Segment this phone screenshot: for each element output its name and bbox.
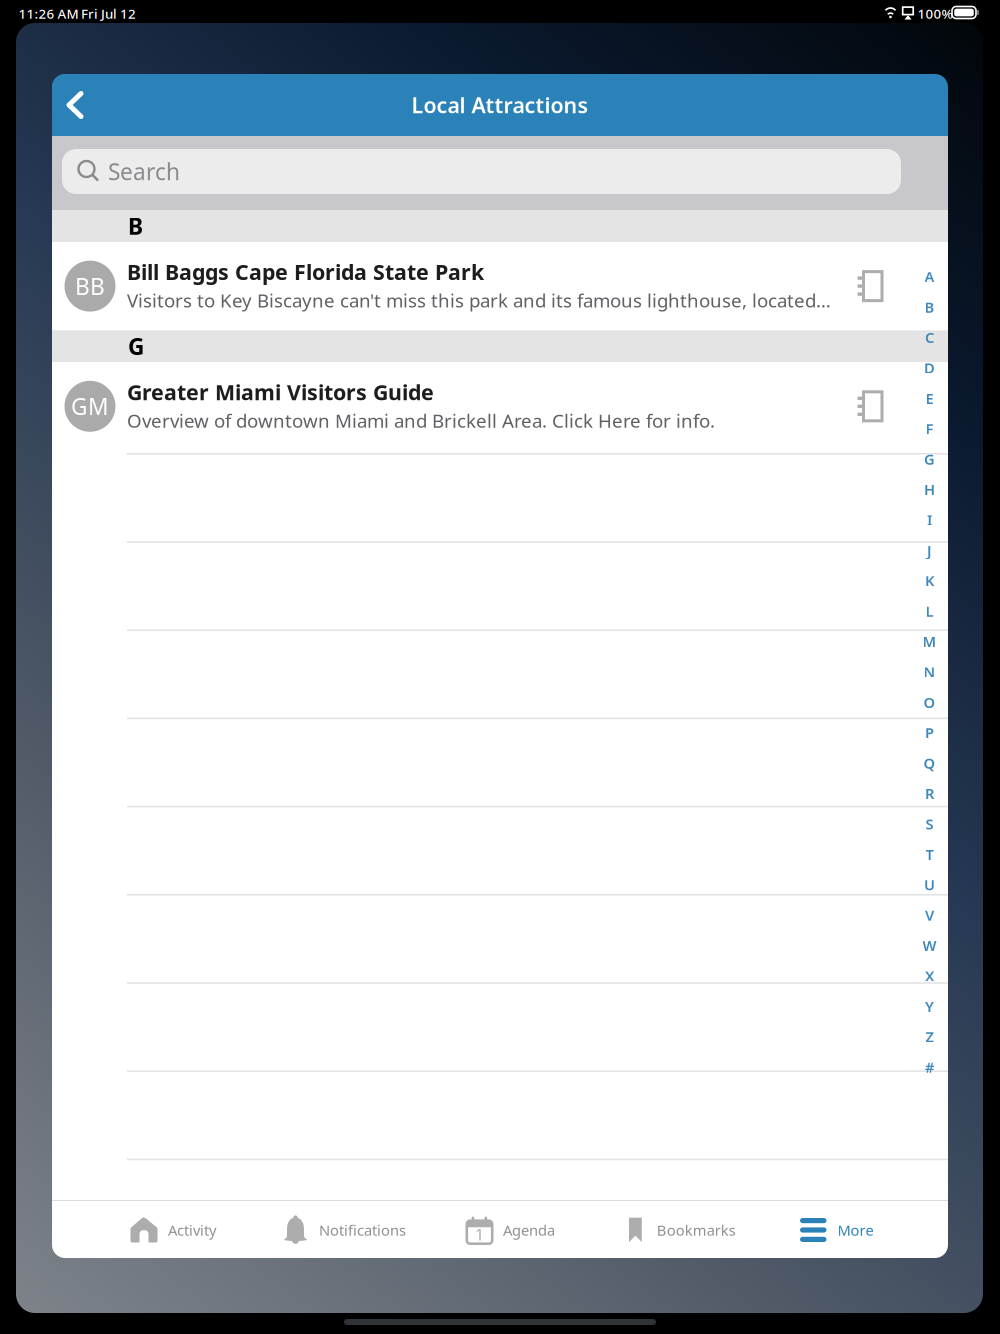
staticText: O [923, 692, 935, 712]
button[interactable]: More [800, 1202, 984, 1258]
staticText: 100% [917, 5, 952, 22]
staticText: J [927, 540, 932, 560]
staticText: Z [925, 1027, 933, 1046]
staticText: D [924, 358, 935, 378]
staticText: GM [71, 391, 109, 421]
staticText: Bookmarks [657, 1220, 736, 1240]
button[interactable]: Back [52, 74, 98, 136]
staticText: F [925, 419, 933, 438]
staticText: H [924, 480, 935, 499]
button[interactable]: 1 [466, 1202, 666, 1258]
staticText: Greater Miami Visitors Guide [127, 378, 434, 406]
staticText: V [925, 905, 934, 925]
staticText: G [128, 331, 144, 361]
button[interactable]: Notifications [282, 1202, 512, 1258]
staticText: Local Attractions [411, 91, 588, 119]
staticText: Q [923, 753, 935, 773]
button[interactable]: Bookmarks [628, 1202, 840, 1258]
staticText: K [925, 571, 934, 590]
staticText: A [924, 267, 934, 286]
staticText: # [925, 1057, 934, 1077]
staticText: Y [925, 996, 934, 1016]
staticText: Notifications [319, 1220, 406, 1240]
staticText: More [837, 1220, 873, 1240]
staticText: Overview of downtown Miami and Brickell … [127, 408, 715, 433]
staticText: C [925, 328, 934, 347]
staticText: BB [75, 271, 105, 301]
staticText: Visitors to Key Biscayne can't miss this… [127, 288, 831, 313]
staticText: 11:26 AM [18, 5, 78, 22]
staticText: Activity [168, 1220, 216, 1240]
staticText: W [922, 936, 936, 955]
staticText: R [925, 784, 934, 803]
button[interactable]: BB [52, 242, 948, 330]
staticText: I [927, 510, 932, 530]
staticText: N [923, 662, 935, 682]
staticText: T [925, 844, 933, 864]
staticText: L [925, 601, 933, 621]
button[interactable]: Search [62, 149, 901, 194]
staticText: P [925, 723, 934, 742]
staticText: E [925, 388, 933, 408]
staticText: Agenda [503, 1220, 555, 1240]
staticText: M [922, 632, 936, 651]
staticText: S [925, 814, 933, 834]
staticText: U [924, 875, 935, 894]
staticText: B [924, 297, 934, 317]
staticText: Search [108, 156, 180, 186]
button[interactable]: GM [52, 362, 948, 450]
staticText: 1 [475, 1224, 484, 1245]
staticText: G [924, 449, 935, 469]
button[interactable]: Activity [130, 1202, 330, 1258]
staticText: Fri Jul 12 [81, 5, 136, 22]
staticText: B [128, 211, 143, 241]
staticText: X [925, 966, 934, 986]
staticText: Bill Baggs Cape Florida State Park [127, 257, 484, 286]
